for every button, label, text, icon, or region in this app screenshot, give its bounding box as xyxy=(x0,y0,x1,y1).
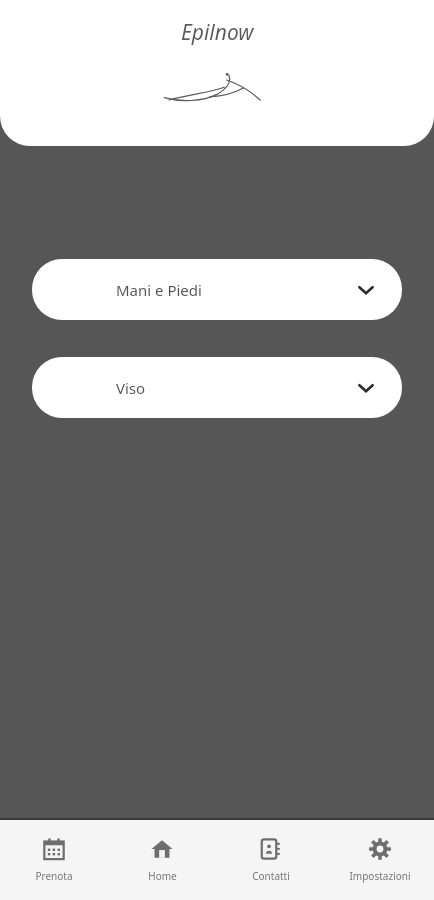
staticText: Impostazioni xyxy=(349,869,411,883)
staticText: Prenota xyxy=(35,869,73,883)
button[interactable]: Mani e Piedi xyxy=(32,259,402,320)
button[interactable]: Prenota xyxy=(0,820,108,900)
staticText: Mani e Piedi xyxy=(116,280,202,300)
staticText: Viso xyxy=(116,378,146,398)
staticText: Contatti xyxy=(252,869,290,883)
button[interactable]: Home xyxy=(108,820,216,900)
button[interactable]: Viso xyxy=(32,357,402,418)
button[interactable]: Impostazioni xyxy=(325,820,434,900)
staticText: Home xyxy=(148,869,177,883)
button[interactable]: Contatti xyxy=(216,820,325,900)
staticText: Epilnow xyxy=(181,18,254,47)
